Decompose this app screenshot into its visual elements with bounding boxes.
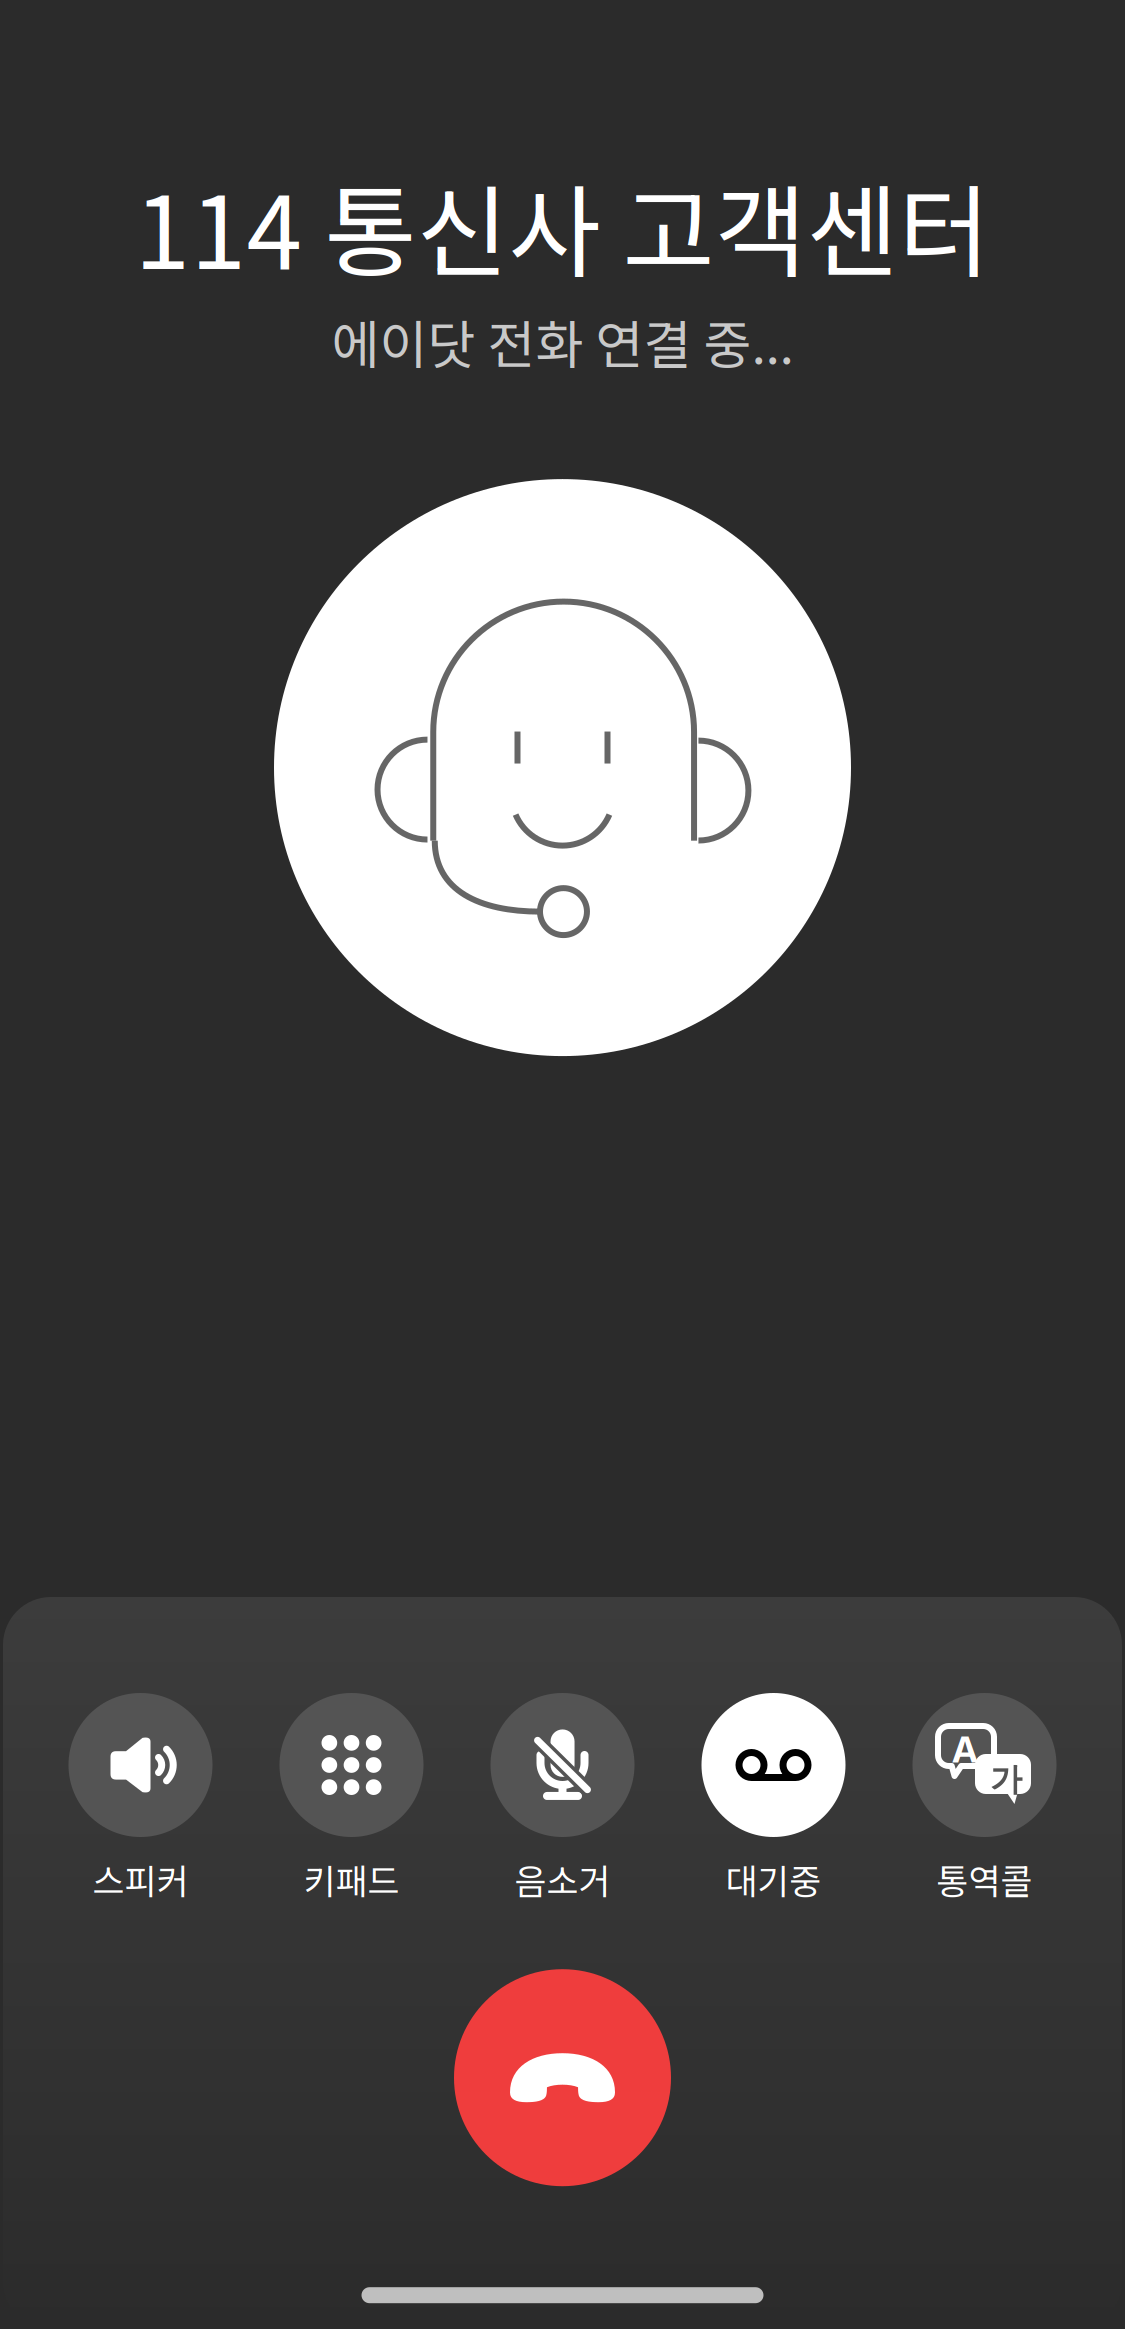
staticText: 통역콜: [936, 1854, 1032, 1904]
button[interactable]: End call: [454, 1969, 671, 2186]
button[interactable]: Keypad: [246, 1693, 457, 1904]
staticText: 가: [990, 1759, 1022, 1800]
staticText: A: [952, 1728, 978, 1771]
staticText: 에이닷 전화 연결 중...: [331, 304, 793, 379]
staticText: 음소거: [514, 1854, 610, 1904]
button[interactable]: Hold: [668, 1693, 879, 1904]
button[interactable]: Mute: [457, 1693, 668, 1904]
staticText: 114 통신사 고객센터: [134, 153, 990, 298]
staticText: 대기중: [725, 1854, 821, 1904]
staticText: 키패드: [303, 1854, 399, 1904]
button[interactable]: Interpretation call: [879, 1693, 1090, 1904]
staticText: 스피커: [92, 1854, 188, 1904]
button[interactable]: Speaker: [35, 1693, 246, 1904]
